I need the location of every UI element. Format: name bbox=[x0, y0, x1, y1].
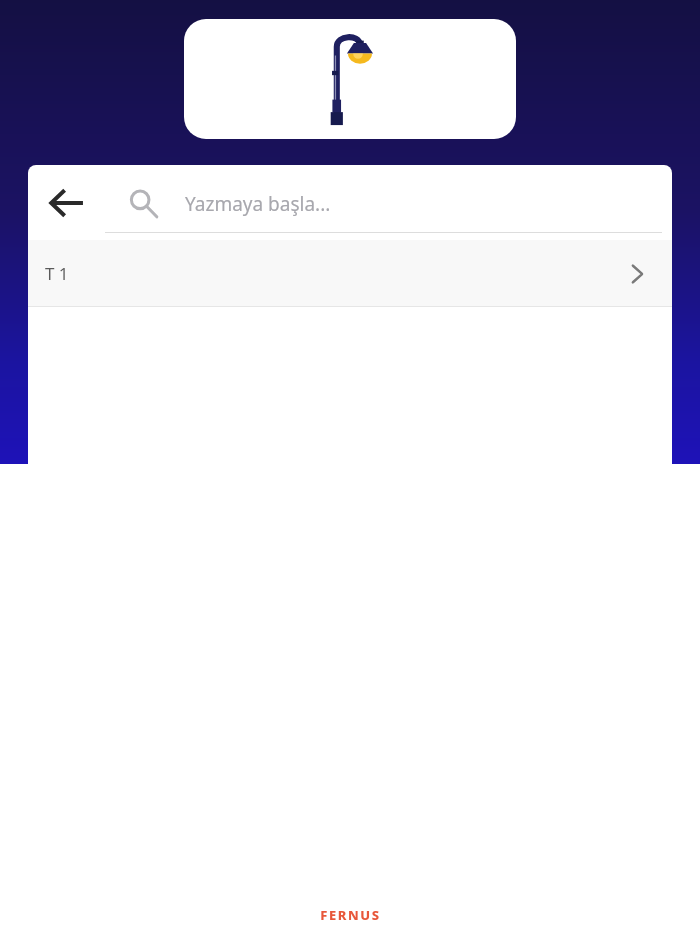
other: Fernus street lamp logo bbox=[322, 31, 380, 127]
button[interactable]: T 1 bbox=[28, 240, 672, 307]
staticText: FERNUS bbox=[320, 906, 381, 924]
button[interactable]: Back bbox=[28, 165, 105, 240]
staticText: T 1 bbox=[45, 262, 69, 285]
other: Open bbox=[624, 261, 650, 287]
button[interactable]: Fernus street lamp logo bbox=[184, 19, 516, 139]
button[interactable]: Yazmaya başla... bbox=[105, 165, 672, 240]
staticText: Yazmaya başla... bbox=[185, 191, 331, 217]
